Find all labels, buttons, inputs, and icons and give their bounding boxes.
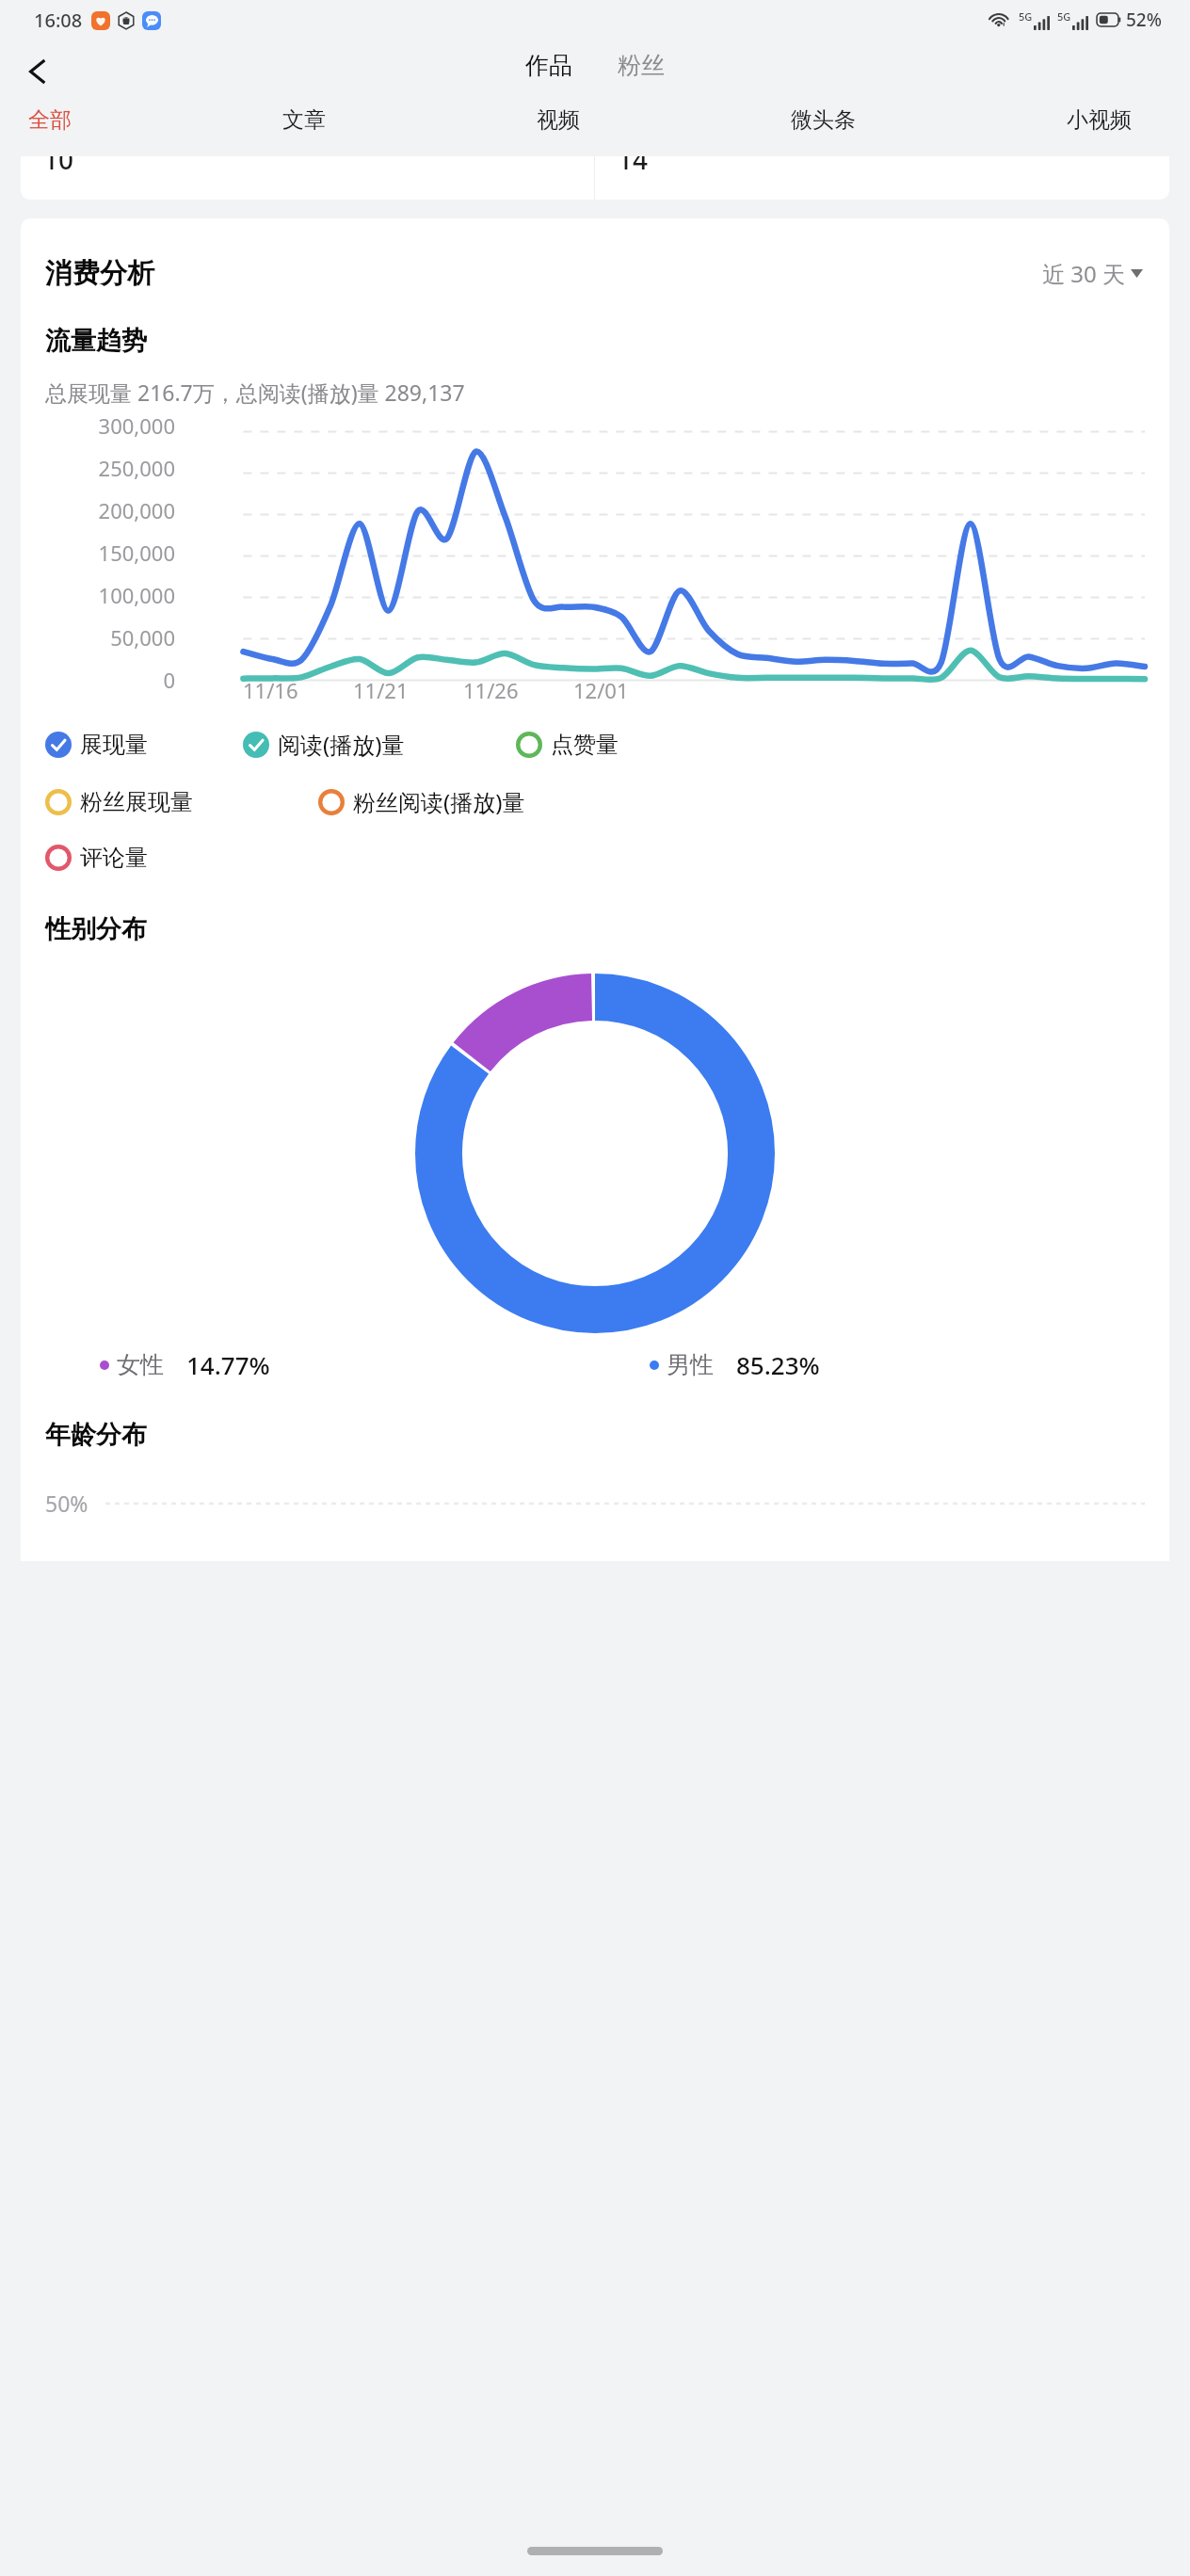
staticText: 50% <box>45 1489 88 1518</box>
staticText: 85.23% <box>736 1348 820 1381</box>
staticText: 粉丝阅读(播放)量 <box>353 786 525 817</box>
staticText: 评论量 <box>80 844 148 872</box>
button[interactable]: Back <box>13 47 62 96</box>
staticText: 粉丝 <box>618 51 665 80</box>
staticText: 50,000 <box>45 623 175 652</box>
staticText: 小视频 <box>1067 106 1132 134</box>
staticText: 视频 <box>537 106 580 134</box>
staticText: 52% <box>1126 8 1162 32</box>
staticText: 作品 <box>525 51 572 80</box>
staticText: 14.77% <box>186 1348 270 1381</box>
staticText: 300,000 <box>45 411 175 440</box>
staticText: 男性 <box>667 1350 714 1379</box>
staticText: 流量趋势 <box>45 325 147 357</box>
button[interactable]: 男性 <box>595 1344 820 1385</box>
button[interactable]: 视频 <box>531 99 586 141</box>
staticText: 年龄分布 <box>45 1419 147 1451</box>
staticText: 点赞量 <box>551 731 619 759</box>
staticText: 粉丝展现量 <box>80 788 193 816</box>
staticText: 11/16 <box>243 676 298 704</box>
staticText: 展现量 <box>80 731 148 759</box>
staticText: 近 30 天 <box>1042 258 1125 289</box>
staticText: 11/26 <box>463 676 519 704</box>
staticText: 14 <box>618 156 649 177</box>
staticText: 阅读(播放)量 <box>278 729 405 760</box>
button[interactable]: 粉丝 <box>606 47 676 84</box>
button[interactable]: 小视频 <box>1061 99 1137 141</box>
button[interactable]: 近 30 天 <box>1037 252 1149 295</box>
staticText: 10 <box>43 156 74 177</box>
staticText: 100,000 <box>45 581 175 609</box>
staticText: 5G <box>1057 9 1071 24</box>
button[interactable]: 文章 <box>277 99 331 141</box>
staticText: 11/21 <box>353 676 409 704</box>
staticText: 全部 <box>28 106 72 134</box>
button[interactable]: 点赞量 <box>516 727 619 763</box>
button[interactable]: 作品 <box>514 47 584 84</box>
button[interactable]: 评论量 <box>45 840 148 876</box>
staticText: 150,000 <box>45 539 175 567</box>
button[interactable]: 展现量 <box>45 727 148 763</box>
staticText: 总展现量 216.7万，总阅读(播放)量 289,137 <box>45 378 465 407</box>
staticText: 性别分布 <box>45 913 147 945</box>
staticText: 0 <box>45 666 175 694</box>
button[interactable]: 粉丝阅读(播放)量 <box>318 782 525 821</box>
staticText: 文章 <box>282 106 326 134</box>
button[interactable]: 女性 <box>45 1344 270 1385</box>
button[interactable]: 全部 <box>23 99 77 141</box>
staticText: 12/01 <box>573 676 629 704</box>
staticText: 16:08 <box>34 8 83 33</box>
button[interactable]: 阅读(播放)量 <box>243 725 405 764</box>
staticText: 250,000 <box>45 454 175 482</box>
staticText: 5G <box>1019 9 1033 24</box>
button[interactable]: 粉丝展现量 <box>45 784 193 820</box>
staticText: 消费分析 <box>45 256 154 291</box>
staticText: 女性 <box>117 1350 164 1379</box>
staticText: 微头条 <box>791 106 856 134</box>
button[interactable]: 微头条 <box>785 99 861 141</box>
staticText: 200,000 <box>45 496 175 524</box>
